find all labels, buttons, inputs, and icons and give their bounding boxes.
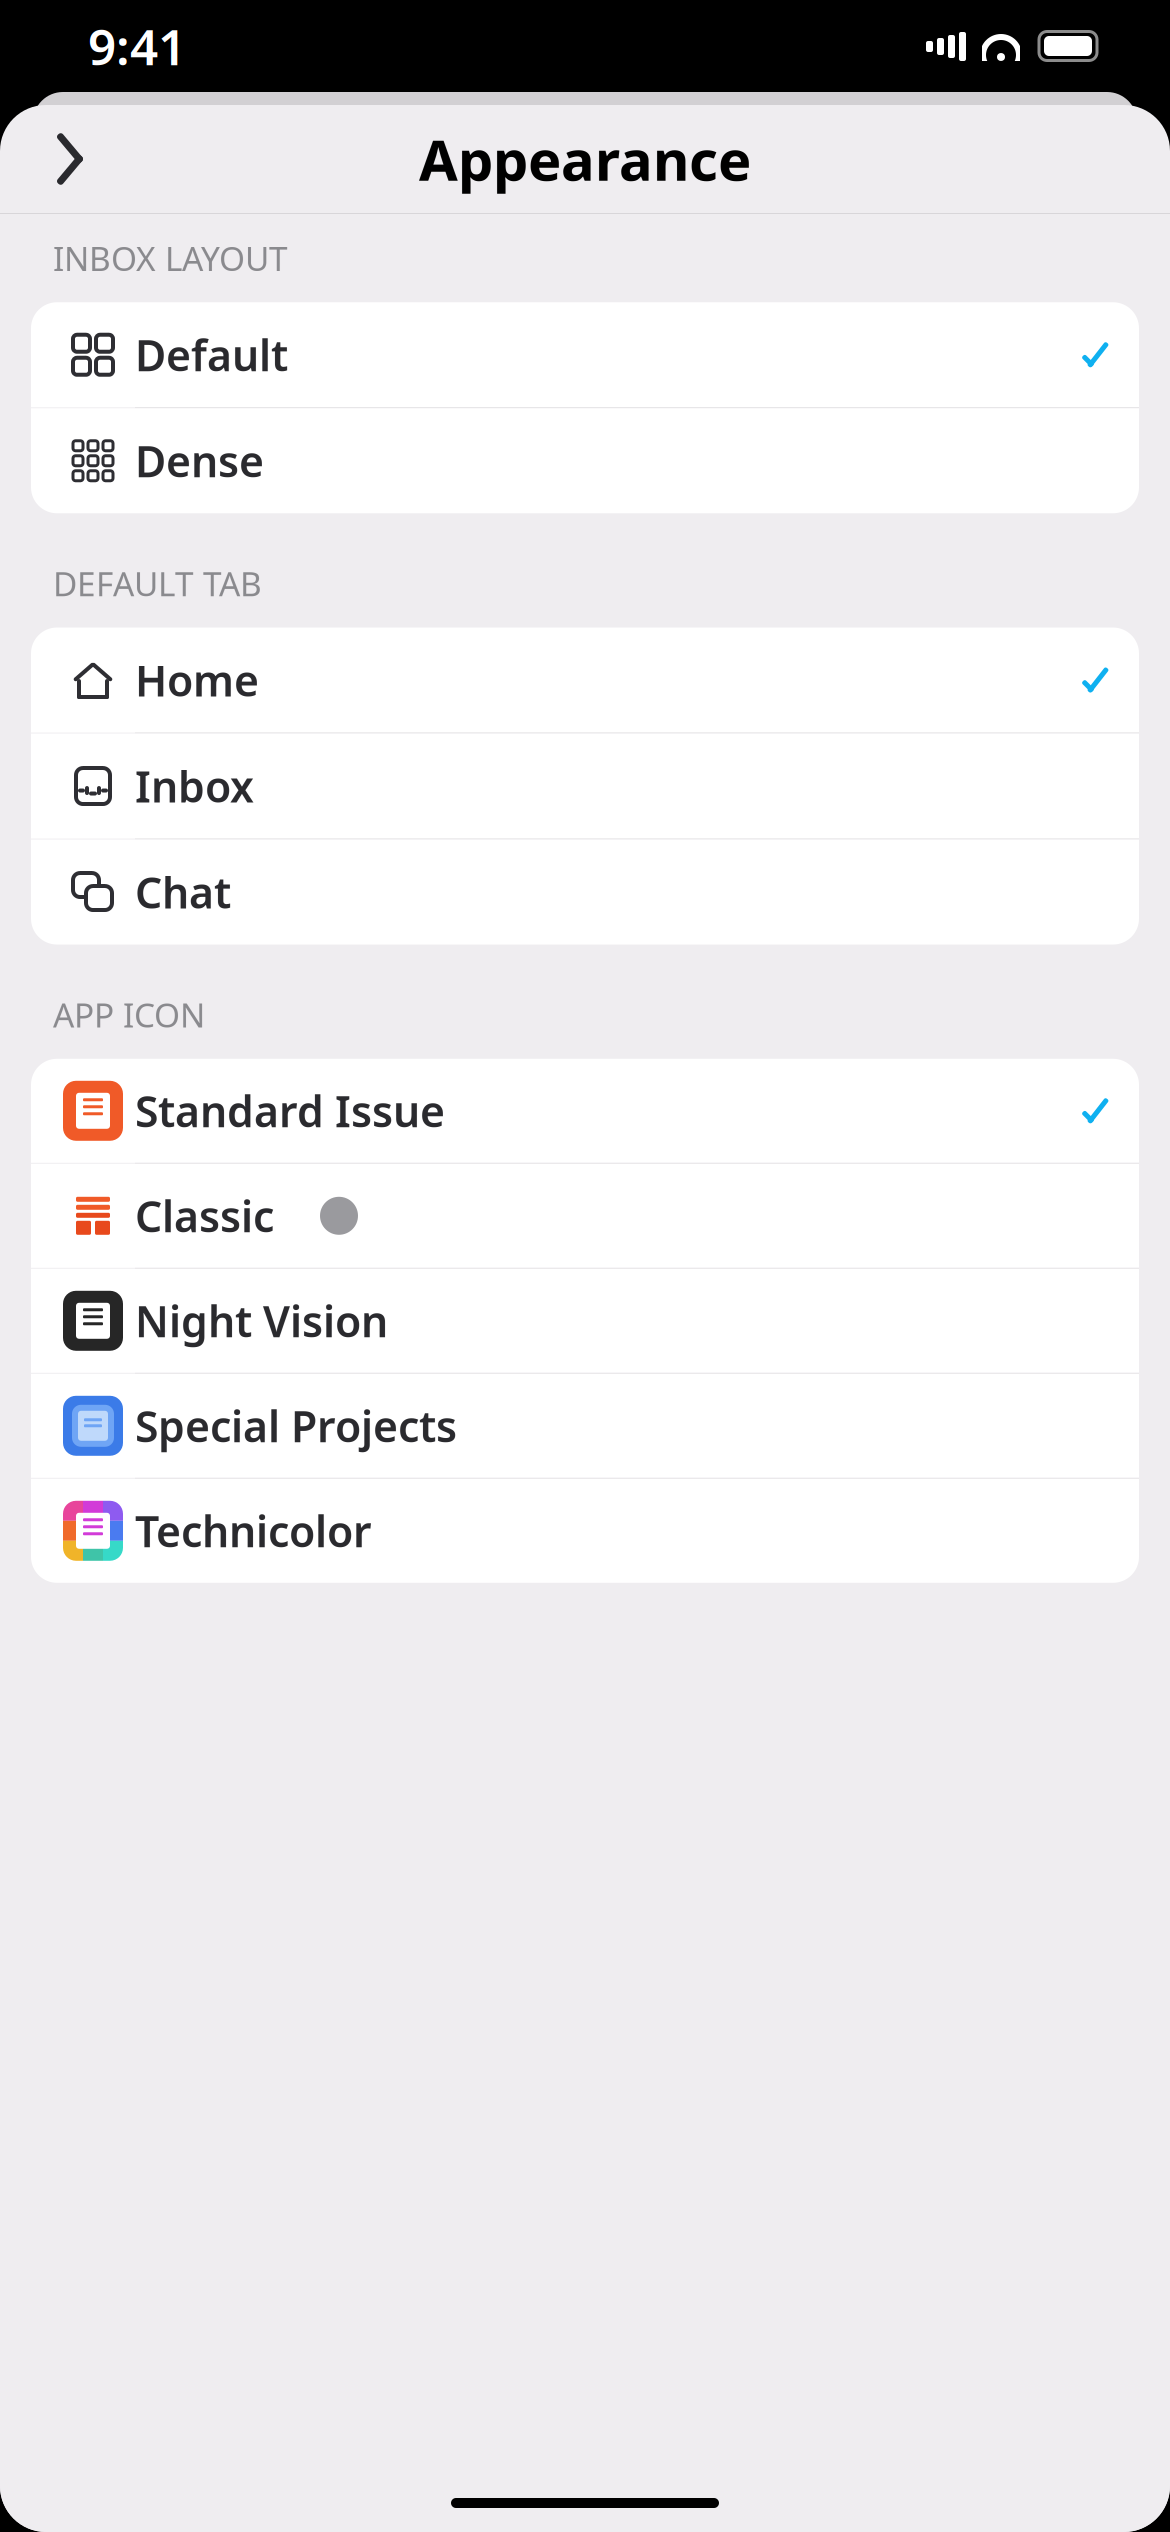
- staticText: APP ICON: [53, 992, 205, 1037]
- staticText: Special Projects: [135, 1397, 457, 1454]
- button[interactable]: Chat: [31, 839, 1139, 944]
- staticText: Chat: [135, 864, 231, 920]
- button[interactable]: Technicolor: [31, 1479, 1139, 1583]
- staticText: Night Vision: [135, 1292, 388, 1349]
- staticText: Classic: [135, 1187, 274, 1244]
- button[interactable]: Standard Issue: [31, 1059, 1139, 1163]
- button[interactable]: Back: [22, 111, 118, 207]
- button[interactable]: Inbox: [31, 733, 1139, 838]
- button[interactable]: Classic: [31, 1164, 1139, 1268]
- button[interactable]: Dense: [31, 408, 1139, 513]
- staticText: INBOX LAYOUT: [53, 236, 288, 280]
- button[interactable]: Home: [31, 627, 1139, 732]
- staticText: Standard Issue: [135, 1082, 445, 1139]
- staticText: 9:41: [88, 13, 186, 79]
- staticText: Inbox: [135, 758, 254, 814]
- staticText: Technicolor: [135, 1502, 372, 1559]
- staticText: Dense: [135, 432, 264, 489]
- staticText: Default: [135, 326, 288, 383]
- staticText: Appearance: [419, 122, 751, 196]
- staticText: Home: [135, 652, 259, 708]
- button[interactable]: Special Projects: [31, 1374, 1139, 1478]
- button[interactable]: Default: [31, 302, 1139, 407]
- staticText: DEFAULT TAB: [53, 561, 262, 606]
- button[interactable]: Night Vision: [31, 1269, 1139, 1373]
